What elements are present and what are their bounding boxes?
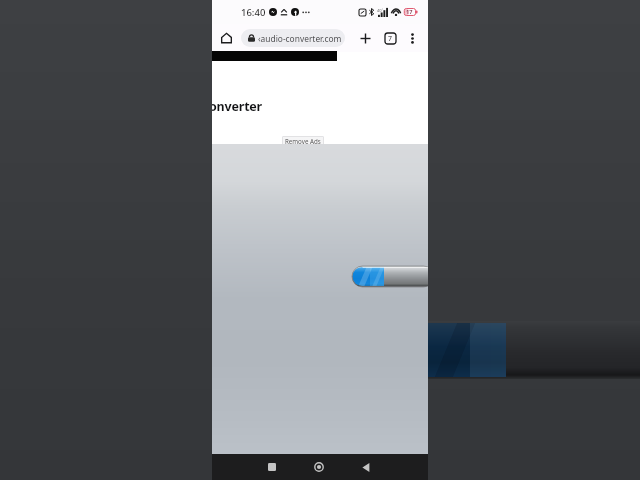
- staticText: Remove Ads: [285, 137, 321, 145]
- button[interactable]: Switch tabs, 7 open: [380, 24, 400, 52]
- staticText: 40⁺: [377, 8, 383, 13]
- button[interactable]: Home: [307, 454, 331, 480]
- button[interactable]: Back: [354, 454, 378, 480]
- staticText: ‹audio-converter.com: [258, 33, 342, 44]
- button[interactable]: More options: [402, 24, 422, 52]
- staticText: 7: [388, 34, 393, 44]
- button[interactable]: Remove Ads: [282, 136, 324, 146]
- button[interactable]: ‹audio-converter.com: [241, 29, 345, 47]
- button[interactable]: Recent apps: [260, 454, 284, 480]
- button[interactable]: Home: [216, 24, 236, 52]
- staticText: onverter: [212, 98, 263, 115]
- staticText: 17: [406, 8, 413, 16]
- staticText: 16:40: [241, 6, 266, 19]
- button[interactable]: New tab: [355, 24, 375, 52]
